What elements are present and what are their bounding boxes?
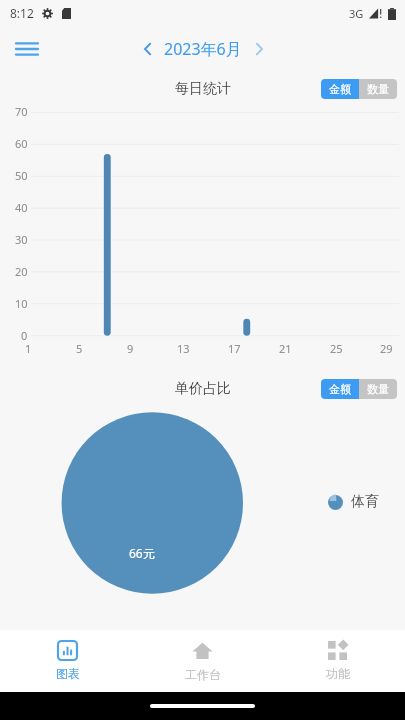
staticText: 30: [15, 232, 28, 247]
staticText: 70: [15, 104, 28, 119]
staticText: 5: [76, 341, 83, 356]
button[interactable]: 2023年6月: [161, 38, 245, 60]
staticText: 10: [15, 296, 28, 311]
button[interactable]: Next month: [245, 35, 273, 63]
staticText: 8:12: [10, 5, 34, 21]
staticText: 25: [330, 341, 343, 356]
staticText: 2023年6月: [164, 38, 242, 60]
button[interactable]: 体育: [328, 493, 379, 511]
button[interactable]: Previous month: [133, 35, 161, 63]
staticText: 17: [228, 341, 241, 356]
staticText: 29: [380, 341, 393, 356]
staticText: 13: [177, 341, 190, 356]
staticText: 66元: [129, 545, 155, 561]
staticText: 工作台: [185, 667, 221, 682]
staticText: 20: [15, 264, 28, 279]
button[interactable]: Menu: [6, 28, 48, 70]
button[interactable]: 数量: [359, 379, 397, 399]
staticText: 单价占比: [175, 380, 231, 398]
staticText: 0: [21, 328, 28, 343]
staticText: 数量: [367, 382, 389, 396]
staticText: 1: [25, 341, 32, 356]
staticText: 体育: [351, 493, 379, 511]
staticText: 9: [127, 341, 134, 356]
button[interactable]: 功能: [270, 630, 405, 692]
button[interactable]: 图表: [0, 630, 135, 692]
staticText: 50: [15, 168, 28, 183]
button[interactable]: 数量: [359, 79, 397, 99]
staticText: 21: [279, 341, 292, 356]
staticText: 金额: [329, 382, 351, 396]
staticText: 金额: [329, 82, 351, 96]
staticText: 功能: [326, 666, 350, 681]
staticText: 图表: [56, 666, 80, 681]
staticText: 数量: [367, 82, 389, 96]
staticText: 40: [15, 200, 28, 215]
staticText: 每日统计: [175, 80, 231, 98]
button[interactable]: 金额: [321, 79, 359, 99]
button[interactable]: 工作台: [135, 630, 270, 692]
staticText: 3G: [349, 6, 364, 21]
staticText: 60: [15, 136, 28, 151]
button[interactable]: 金额: [321, 379, 359, 399]
